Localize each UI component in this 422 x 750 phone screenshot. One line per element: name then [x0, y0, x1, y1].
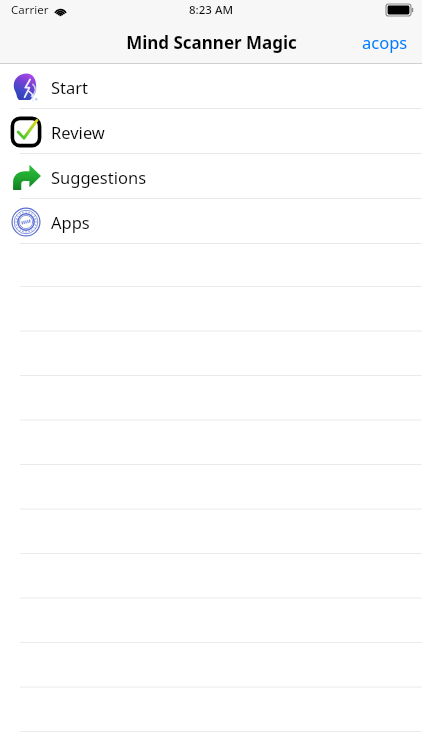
- button[interactable]: Suggestions: [0, 154, 422, 199]
- staticText: Apps: [51, 211, 90, 233]
- staticText: Suggestions: [51, 166, 147, 188]
- staticText: Carrier: [11, 2, 49, 18]
- button[interactable]: Start: [0, 64, 422, 109]
- staticText: acops: [362, 31, 408, 53]
- staticText: 8:23 AM: [189, 2, 233, 18]
- button[interactable]: Apps: [0, 199, 422, 244]
- button[interactable]: acops: [348, 23, 422, 61]
- button[interactable]: Review: [0, 109, 422, 154]
- staticText: Review: [51, 121, 105, 143]
- staticText: Start: [51, 76, 89, 98]
- staticText: Mind Scanner Magic: [126, 31, 297, 54]
